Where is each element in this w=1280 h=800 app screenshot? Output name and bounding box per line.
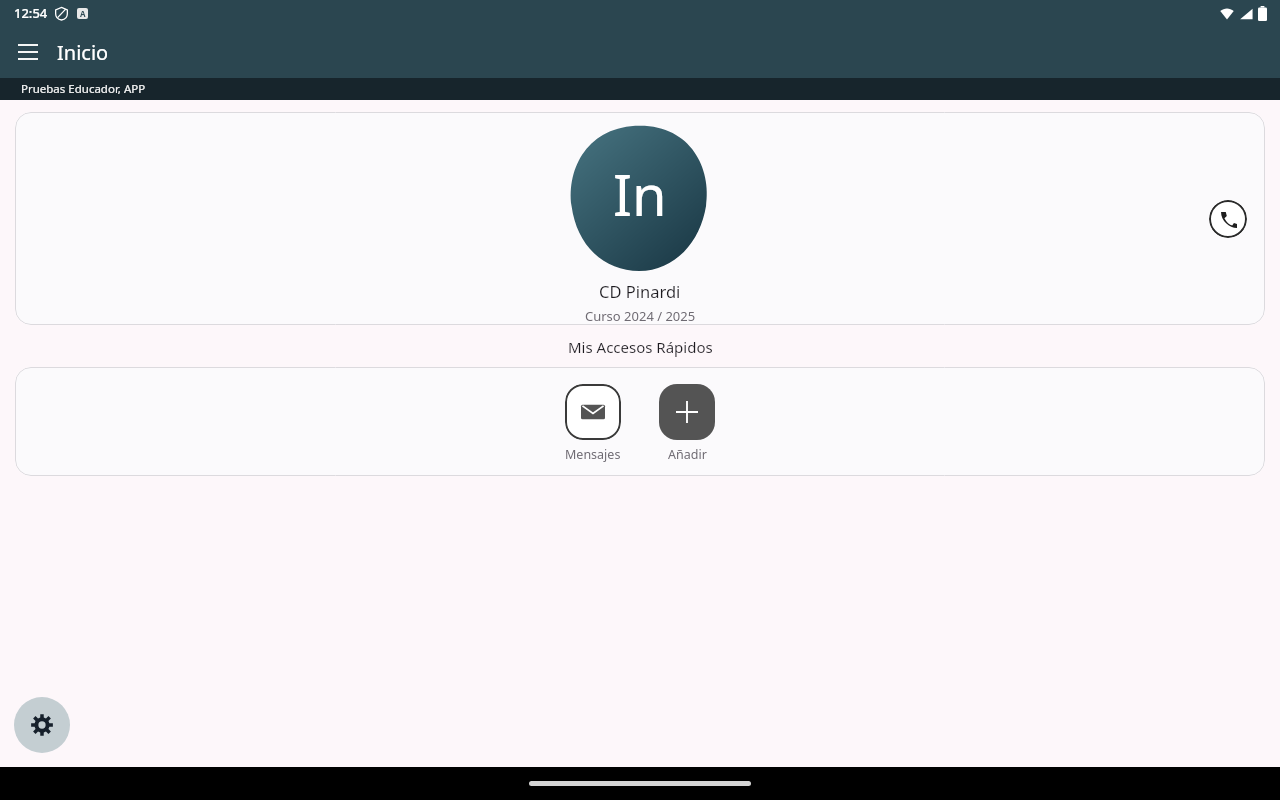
staticText: Curso 2024 / 2025 <box>585 307 696 325</box>
staticText: 12:54 <box>14 4 48 22</box>
staticText: Añadir <box>668 446 707 463</box>
staticText: Inicio <box>57 39 109 66</box>
button[interactable]: Ajustes <box>14 697 70 753</box>
button[interactable]: Mensajes <box>565 384 621 463</box>
staticText: Pruebas Educador, APP <box>21 81 146 97</box>
button[interactable]: Añadir <box>659 384 715 463</box>
staticText: Mensajes <box>565 446 621 463</box>
staticText: In <box>613 156 667 232</box>
staticText: CD Pinardi <box>599 280 681 302</box>
button[interactable]: Menú <box>10 34 46 70</box>
staticText: Mis Accesos Rápidos <box>568 337 713 357</box>
button[interactable]: Llamar <box>1209 200 1247 238</box>
button[interactable]: In <box>15 112 1265 325</box>
staticText: A <box>80 8 86 19</box>
